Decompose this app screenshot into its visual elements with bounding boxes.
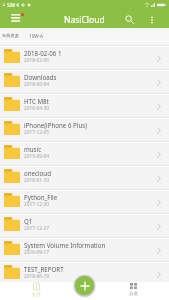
staticText: Python_File: [24, 193, 58, 201]
staticText: iPhone(iPhone 6 Plus): [24, 121, 88, 129]
staticText: 2016-04-30: [24, 105, 50, 112]
staticText: TEST_REPORT: [24, 265, 64, 273]
button[interactable]: 2018-02-06 1: [0, 45, 169, 69]
staticText: 2018-02-06: [24, 57, 50, 64]
button[interactable]: Q1: [0, 213, 169, 237]
button[interactable]: Python_File: [0, 189, 169, 213]
button[interactable]: Add: [75, 276, 94, 295]
button[interactable]: More options: [143, 11, 160, 28]
staticText: NasiCloud: [64, 14, 105, 26]
staticText: music: [24, 145, 42, 153]
staticText: 2017-12-05: [24, 129, 50, 136]
button[interactable]: Search: [115, 10, 143, 28]
button[interactable]: music: [0, 141, 169, 165]
staticText: HTC M8t: [24, 97, 49, 105]
button[interactable]: iPhone(iPhone 6 Plus): [0, 117, 169, 141]
button[interactable]: System Volume Information: [0, 237, 169, 261]
staticText: 2017-12-30: [24, 201, 50, 208]
button[interactable]: 分类: [118, 282, 148, 300]
button[interactable]: 文件: [21, 282, 51, 300]
staticText: onecloud: [24, 169, 51, 177]
staticText: 2018-06-19: [24, 273, 50, 280]
staticText: 10W-A: [29, 33, 43, 39]
staticText: 2018-06-04: [24, 81, 50, 88]
staticText: 无线资源: [2, 33, 19, 38]
staticText: 2018-02-06 1: [24, 49, 62, 57]
staticText: 2015-09-04: [24, 153, 50, 160]
button[interactable]: Downloads: [0, 69, 169, 93]
button[interactable]: TEST_REPORT: [0, 261, 169, 285]
staticText: System Volume Information: [24, 241, 106, 249]
staticText: 文件: [32, 292, 41, 298]
staticText: Downloads: [24, 73, 57, 81]
button[interactable]: HTC M8t: [0, 93, 169, 117]
button[interactable]: Menu: [6, 10, 28, 28]
staticText: 2018-01-10: [24, 177, 50, 184]
staticText: SIM 4: [7, 2, 19, 8]
staticText: 分类: [129, 291, 138, 297]
staticText: Q1: [24, 217, 33, 225]
staticText: 2017-12-27: [24, 225, 50, 232]
staticText: 2016-09-17: [24, 249, 50, 256]
button[interactable]: onecloud: [0, 165, 169, 189]
